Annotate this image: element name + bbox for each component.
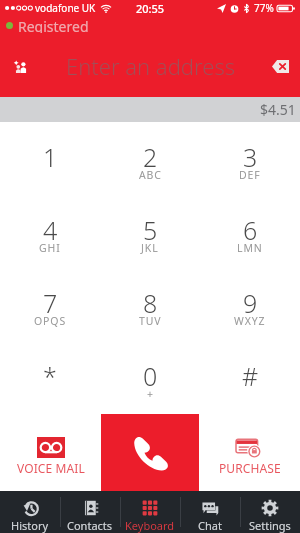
- staticText: 1: [43, 140, 58, 174]
- staticText: Enter an address: [66, 51, 235, 81]
- staticText: 4: [43, 213, 58, 247]
- staticText: VOICE MAIL: [17, 460, 85, 476]
- staticText: WXYZ: [234, 314, 266, 328]
- staticText: 77%: [254, 1, 274, 15]
- button[interactable]: 8: [100, 268, 200, 341]
- staticText: Chat: [198, 518, 222, 533]
- button[interactable]: 0: [100, 341, 200, 414]
- button[interactable]: PURCHASE: [199, 414, 300, 491]
- button[interactable]: Contacts: [60, 491, 120, 533]
- staticText: TUV: [139, 314, 162, 328]
- staticText: 8: [143, 286, 158, 320]
- staticText: Contacts: [67, 518, 113, 533]
- button[interactable]: Add contact: [7, 53, 33, 79]
- staticText: Settings: [249, 518, 291, 533]
- button[interactable]: VOICE MAIL: [0, 414, 101, 491]
- button[interactable]: *: [0, 341, 100, 414]
- button[interactable]: #: [200, 341, 300, 414]
- staticText: 20:55: [136, 1, 165, 16]
- staticText: $4.51: [260, 100, 296, 119]
- button[interactable]: Call: [101, 414, 199, 491]
- staticText: 9: [243, 286, 258, 320]
- staticText: Registered: [18, 17, 89, 33]
- staticText: Keyboard: [125, 518, 175, 533]
- staticText: OPQS: [34, 314, 67, 328]
- button[interactable]: 7: [0, 268, 100, 341]
- staticText: GHI: [39, 241, 61, 255]
- staticText: 5: [143, 213, 158, 247]
- button[interactable]: 4: [0, 195, 100, 268]
- staticText: *: [43, 359, 57, 393]
- staticText: JKL: [141, 241, 159, 255]
- staticText: ABC: [139, 168, 162, 182]
- staticText: 3: [243, 140, 258, 174]
- staticText: 6: [243, 213, 258, 247]
- button[interactable]: Keyboard: [120, 491, 180, 533]
- staticText: 2: [143, 140, 158, 174]
- button[interactable]: 2: [100, 122, 200, 195]
- staticText: PURCHASE: [219, 460, 281, 476]
- button[interactable]: Settings: [240, 491, 300, 533]
- staticText: History: [11, 518, 49, 533]
- button[interactable]: 6: [200, 195, 300, 268]
- button[interactable]: Backspace: [267, 53, 293, 79]
- staticText: DEF: [239, 168, 261, 182]
- staticText: +: [147, 387, 154, 401]
- button[interactable]: History: [0, 491, 60, 533]
- staticText: 0: [143, 359, 158, 393]
- button[interactable]: 1: [0, 122, 100, 195]
- staticText: vodafone UK: [35, 1, 96, 15]
- staticText: 7: [43, 286, 58, 320]
- staticText: #: [242, 359, 259, 393]
- button[interactable]: 9: [200, 268, 300, 341]
- button[interactable]: 3: [200, 122, 300, 195]
- staticText: LMN: [237, 241, 263, 255]
- button[interactable]: Chat: [180, 491, 240, 533]
- button[interactable]: 5: [100, 195, 200, 268]
